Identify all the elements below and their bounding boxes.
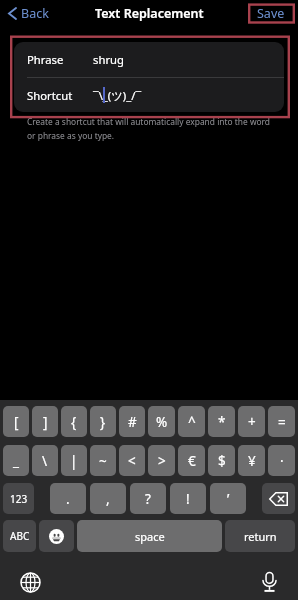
button[interactable]: [ (3, 406, 29, 437)
button[interactable]: ¥ (238, 445, 265, 476)
staticText: { (71, 413, 77, 431)
button[interactable]: ! (170, 483, 206, 514)
staticText: or phrase as you type. (27, 130, 115, 141)
staticText: Text Replacement (95, 5, 204, 22)
button[interactable]: > (148, 445, 175, 476)
button[interactable]: Phrase (14, 42, 284, 77)
staticText: % (156, 413, 168, 431)
button[interactable]: Emoji (39, 520, 74, 552)
staticText: . (66, 490, 70, 508)
button[interactable]: + (238, 406, 265, 437)
button[interactable]: \ (32, 445, 58, 476)
button[interactable]: , (90, 483, 126, 514)
button[interactable]: # (119, 406, 145, 437)
staticText: Phrase (27, 52, 64, 67)
staticText: | (70, 452, 78, 470)
staticText: } (100, 413, 106, 431)
staticText: > (158, 452, 166, 470)
staticText: · (280, 452, 284, 470)
staticText: Save (257, 5, 285, 22)
staticText: Back (21, 5, 49, 22)
staticText: = (278, 413, 286, 431)
button[interactable]: } (90, 406, 116, 437)
button[interactable]: ] (32, 406, 58, 437)
staticText: shrug (93, 52, 124, 67)
button[interactable]: . (50, 483, 86, 514)
button[interactable]: Backspace (262, 483, 295, 514)
staticText: , (106, 490, 110, 508)
button[interactable]: { (61, 406, 87, 437)
staticText: + (248, 413, 256, 431)
button[interactable]: return (225, 520, 295, 552)
button[interactable]: ^ (178, 406, 205, 437)
staticText: € (188, 452, 196, 470)
staticText: space (135, 529, 165, 544)
button[interactable]: ’ (210, 483, 246, 514)
staticText: ] (43, 413, 48, 431)
staticText: ABC (10, 529, 30, 543)
staticText: _ (13, 452, 19, 470)
staticText: ’ (227, 490, 230, 508)
button[interactable]: % (148, 406, 175, 437)
button[interactable]: ? (130, 483, 166, 514)
staticText: ¥ (248, 452, 256, 470)
staticText: # (128, 413, 137, 431)
button[interactable]: $ (208, 445, 235, 476)
button[interactable]: = (268, 406, 295, 437)
button[interactable]: · (268, 445, 295, 476)
button[interactable]: < (119, 445, 145, 476)
staticText: ^ (188, 413, 196, 431)
button[interactable]: * (208, 406, 235, 437)
staticText: $ (218, 452, 226, 470)
staticText: 123 (10, 492, 28, 506)
staticText: [ (14, 413, 19, 431)
button[interactable]: Save (245, 0, 298, 27)
staticText: \ (42, 452, 48, 470)
button[interactable]: Switch keyboard language (14, 566, 46, 598)
staticText: ~ (99, 452, 107, 470)
staticText: ! (186, 490, 190, 508)
button[interactable]: ~ (90, 445, 116, 476)
button[interactable]: ABC (3, 520, 36, 552)
button[interactable]: Shortcut (14, 78, 284, 112)
staticText: < (128, 452, 136, 470)
staticText: * (218, 413, 226, 431)
button[interactable]: € (178, 445, 205, 476)
staticText: ¯\_(ツ)_/¯ (93, 88, 142, 103)
button[interactable]: Dictation (253, 566, 285, 598)
staticText: return (244, 529, 277, 544)
button[interactable]: space (77, 520, 222, 552)
staticText: ? (145, 490, 151, 508)
button[interactable]: Back (0, 1, 59, 26)
button[interactable]: 123 (3, 483, 34, 514)
staticText: Shortcut (27, 88, 73, 103)
button[interactable]: | (61, 445, 87, 476)
staticText: Create a shortcut that will automaticall… (27, 116, 271, 127)
button[interactable]: _ (3, 445, 29, 476)
